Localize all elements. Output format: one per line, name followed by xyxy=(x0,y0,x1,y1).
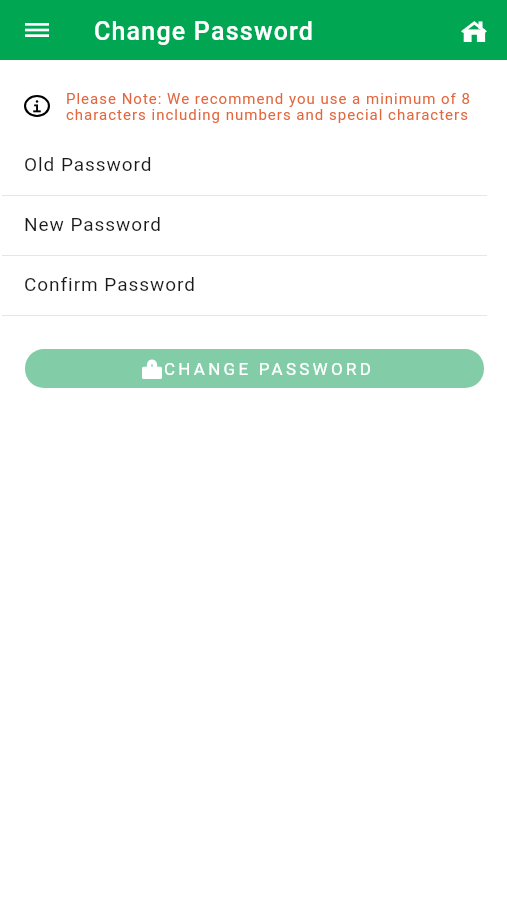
staticText: CHANGE PASSWORD xyxy=(164,359,375,379)
staticText: Old Password xyxy=(24,153,153,175)
staticText: Confirm Password xyxy=(24,273,196,295)
staticText: Please Note: We recommend you use a mini… xyxy=(66,90,485,124)
button[interactable]: Old Password xyxy=(0,136,507,195)
staticText: New Password xyxy=(24,213,162,235)
button[interactable]: New Password xyxy=(0,196,507,255)
button[interactable]: Confirm Password xyxy=(0,256,507,315)
button[interactable]: Open navigation menu xyxy=(14,7,60,53)
button[interactable]: Home xyxy=(452,9,496,53)
staticText: Change Password xyxy=(94,17,315,46)
button[interactable]: CHANGE PASSWORD xyxy=(25,349,484,388)
